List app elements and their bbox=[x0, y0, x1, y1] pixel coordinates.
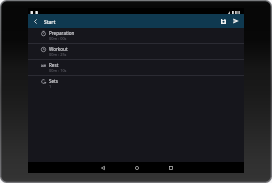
staticText: Preparation bbox=[49, 30, 75, 36]
staticText: 1 bbox=[49, 84, 52, 89]
button[interactable]: Sets bbox=[28, 76, 244, 92]
staticText: 00m : 25s bbox=[49, 52, 67, 57]
staticText: Workout bbox=[49, 46, 68, 52]
staticText: Sets bbox=[49, 78, 58, 84]
button[interactable]: Save bbox=[218, 14, 229, 28]
staticText: 00m : 00s bbox=[49, 36, 67, 41]
staticText: 00m : 10s bbox=[49, 68, 67, 73]
button[interactable]: Home bbox=[130, 162, 143, 173]
staticText: Start bbox=[44, 19, 56, 26]
button[interactable]: Workout bbox=[28, 44, 244, 60]
button[interactable]: Back bbox=[96, 162, 109, 173]
button[interactable]: Navigate up bbox=[28, 14, 43, 28]
button[interactable]: Rest bbox=[28, 60, 244, 76]
button[interactable]: Preparation bbox=[28, 28, 244, 44]
button[interactable]: Recent apps bbox=[164, 162, 177, 173]
staticText: Rest bbox=[49, 62, 59, 68]
button[interactable]: Start workout bbox=[229, 14, 243, 28]
